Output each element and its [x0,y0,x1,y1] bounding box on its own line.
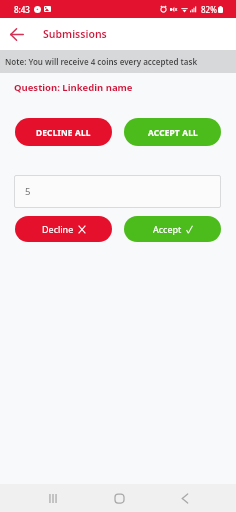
staticText: Note: You will receive 4 coins every acc… [5,56,198,67]
button[interactable]: 5 [14,175,221,208]
staticText: Accept [153,223,182,235]
button[interactable]: Back [0,18,33,50]
staticText: ACCEPT ALL [148,127,198,138]
staticText: 82% [201,4,217,15]
button[interactable]: Recent apps [33,484,73,512]
staticText: Decline [42,223,74,235]
staticText: Question: Linkedin name [14,81,133,94]
staticText: DECLINE ALL [36,127,91,138]
button[interactable]: Decline [15,216,112,242]
button[interactable]: DECLINE ALL [15,118,112,146]
button[interactable]: Accept [124,216,221,242]
staticText: 5 [25,185,31,198]
button[interactable]: Back [165,484,205,512]
staticText: 8:43 [14,4,30,15]
button[interactable]: ACCEPT ALL [124,118,221,146]
staticText: Submissions [43,27,107,41]
button[interactable]: Home [99,484,139,512]
